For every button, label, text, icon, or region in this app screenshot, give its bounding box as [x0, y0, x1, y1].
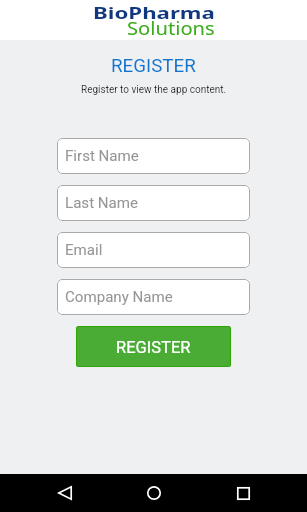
button[interactable]: Last Name [57, 185, 250, 221]
staticText: Company Name [65, 288, 173, 306]
button[interactable]: Home [135, 474, 173, 512]
button[interactable]: Recent apps [224, 474, 262, 512]
button[interactable]: Company Name [57, 279, 250, 315]
button[interactable]: Back [46, 474, 84, 512]
staticText: Email [65, 241, 103, 259]
staticText: First Name [65, 147, 139, 165]
button[interactable]: Email [57, 232, 250, 268]
staticText: Solutions [127, 16, 215, 41]
staticText: Register to view the app content. [81, 84, 227, 96]
staticText: REGISTER [116, 338, 191, 357]
button[interactable]: REGISTER [76, 326, 231, 367]
button[interactable]: First Name [57, 138, 250, 174]
staticText: BioPharma [93, 2, 215, 24]
staticText: Last Name [65, 194, 139, 212]
staticText: REGISTER [111, 55, 196, 77]
